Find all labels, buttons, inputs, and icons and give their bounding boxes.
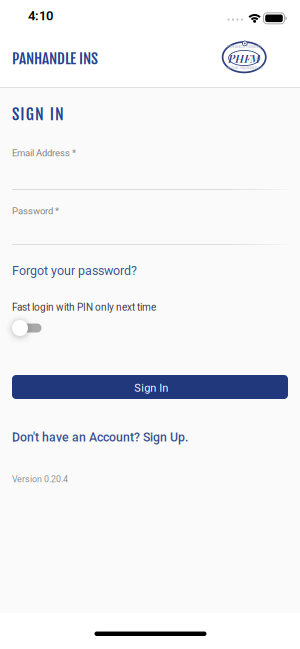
staticText: Sign In — [134, 382, 168, 394]
button[interactable]: Don't have an Account? Sign Up. — [12, 430, 188, 445]
staticText: Forgot your password? — [12, 263, 137, 278]
button[interactable]: Forgot your password? — [12, 263, 137, 278]
button[interactable]: Password * — [12, 204, 288, 245]
button[interactable] — [12, 316, 50, 340]
staticText: Password * — [12, 205, 59, 217]
staticText: MUTUAL INSURANCE CO — [226, 66, 262, 70]
staticText: Version 0.20.4 — [12, 474, 68, 484]
staticText: PHFM — [228, 51, 260, 65]
button[interactable]: Sign In — [12, 375, 288, 399]
staticText: Don't have an Account? Sign Up. — [12, 430, 188, 445]
staticText: Email Address * — [12, 147, 76, 159]
button[interactable]: Email Address * — [12, 145, 288, 190]
staticText: 4:10 — [28, 8, 53, 23]
staticText: SIGN IN — [12, 104, 64, 124]
staticText: Fast login with PIN only next time — [12, 301, 156, 313]
staticText: PANHANDLE FARMERS — [227, 45, 261, 49]
staticText: PANHANDLE INS — [12, 49, 98, 68]
